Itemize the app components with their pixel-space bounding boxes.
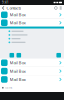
staticText: 9:41 bbox=[2, 1, 9, 4]
button[interactable]: Mail Box bbox=[0, 67, 64, 75]
staticText: Mail Box bbox=[10, 60, 26, 65]
staticText: Mail Box bbox=[10, 12, 26, 17]
staticText: Mail Box bbox=[10, 77, 26, 82]
button[interactable]: More bbox=[57, 6, 62, 9]
button[interactable]: Mail Box bbox=[0, 59, 64, 67]
button[interactable]: Mail Box bbox=[0, 11, 64, 19]
staticText: items bbox=[5, 86, 12, 89]
button[interactable]: Search bbox=[55, 7, 57, 9]
staticText: Mail Box bbox=[10, 20, 26, 25]
button[interactable]: Mail Box bbox=[0, 75, 64, 83]
staticText: Mail Box bbox=[10, 68, 26, 74]
button[interactable]: Mail Box bbox=[0, 19, 64, 27]
button[interactable]: Back bbox=[2, 6, 4, 10]
staticText: Contacts bbox=[6, 5, 21, 11]
